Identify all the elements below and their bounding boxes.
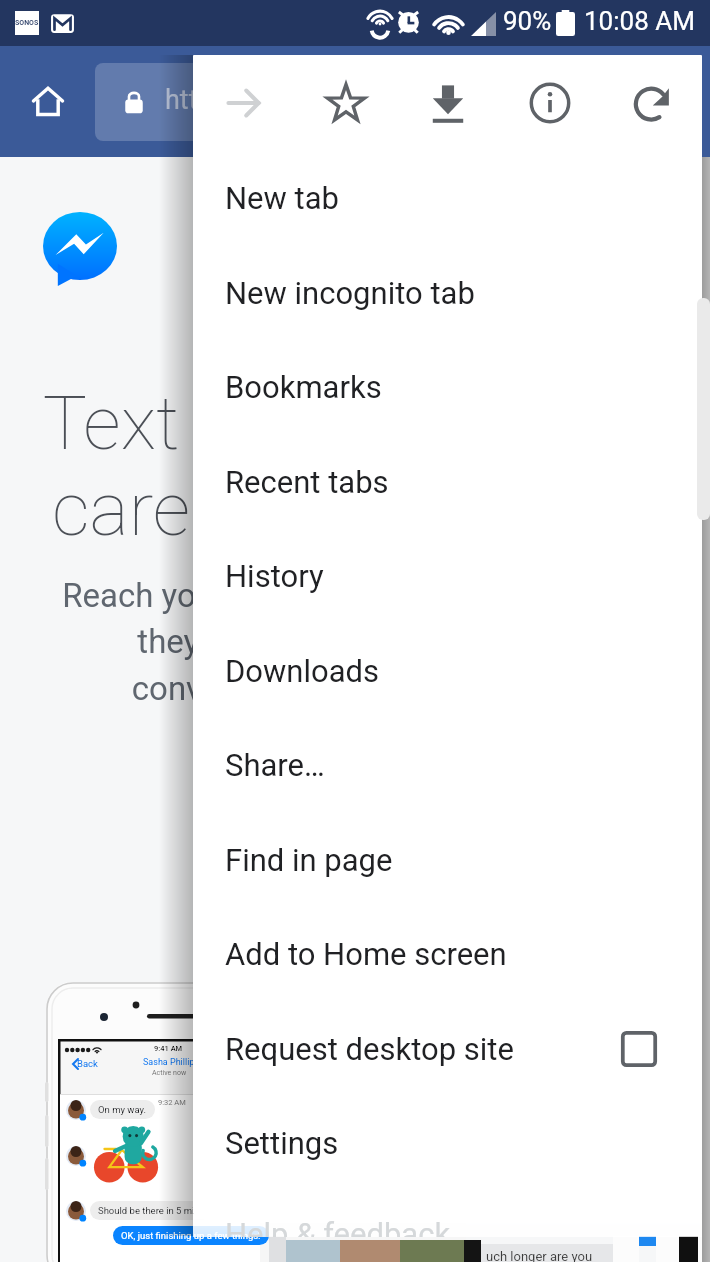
staticText: Recent tabs — [225, 464, 389, 500]
button[interactable]: Bookmark — [295, 55, 397, 150]
staticText: History — [225, 558, 324, 594]
button[interactable]: Home — [30, 84, 66, 120]
staticText: New incognito tab — [225, 275, 475, 311]
staticText: 10:08 AM — [584, 6, 695, 36]
staticText: On my way. — [98, 1104, 147, 1115]
button[interactable]: Add to Home screen — [193, 907, 702, 1001]
staticText: uch longer are you — [486, 1249, 593, 1262]
staticText: Help & feedback — [225, 1216, 451, 1237]
staticText: Sasha Phillips — [143, 1057, 200, 1068]
button[interactable]: Recent tabs — [193, 435, 702, 529]
staticText: Bookmarks — [225, 369, 382, 405]
staticText: Should be there in 5 mins — [98, 1205, 205, 1216]
button[interactable]: Share… — [193, 718, 702, 812]
button[interactable]: Page info — [499, 55, 601, 150]
staticText: 90% — [503, 6, 552, 36]
staticText: Add to Home screen — [225, 936, 507, 972]
staticText: Share… — [225, 747, 325, 783]
staticText: Find in page — [225, 842, 393, 878]
staticText: Text the people you care about, for free — [12, 380, 692, 553]
button[interactable]: Settings — [193, 1096, 702, 1190]
staticText: OK, just finishing up a few things! — [121, 1230, 261, 1241]
button[interactable]: https://www.messenger.com — [95, 63, 655, 141]
staticText: Request desktop site — [225, 1031, 514, 1067]
button[interactable]: Downloads — [193, 624, 702, 718]
button[interactable]: Bookmarks — [193, 340, 702, 434]
staticText: Active now — [152, 1069, 187, 1077]
staticText: 9:41 AM — [154, 1044, 183, 1053]
staticText: https://www.messenger.com — [165, 84, 512, 116]
button[interactable]: Download — [397, 55, 499, 150]
button[interactable]: History — [193, 529, 702, 623]
button[interactable]: Request desktop site — [193, 1002, 702, 1096]
button[interactable]: Forward — [193, 55, 295, 150]
staticText: 9:32 AM — [158, 1098, 186, 1107]
button[interactable]: New tab — [193, 151, 702, 245]
staticText: SONOS — [15, 19, 39, 27]
button[interactable]: Find in page — [193, 813, 702, 907]
staticText: Back — [77, 1058, 98, 1069]
staticText: Reach your friends and family wherever t… — [10, 576, 690, 708]
staticText: Downloads — [225, 653, 380, 689]
button[interactable]: New incognito tab — [193, 246, 702, 340]
staticText: Settings — [225, 1125, 339, 1161]
staticText: New tab — [225, 180, 339, 216]
button[interactable]: Reload — [601, 55, 702, 150]
